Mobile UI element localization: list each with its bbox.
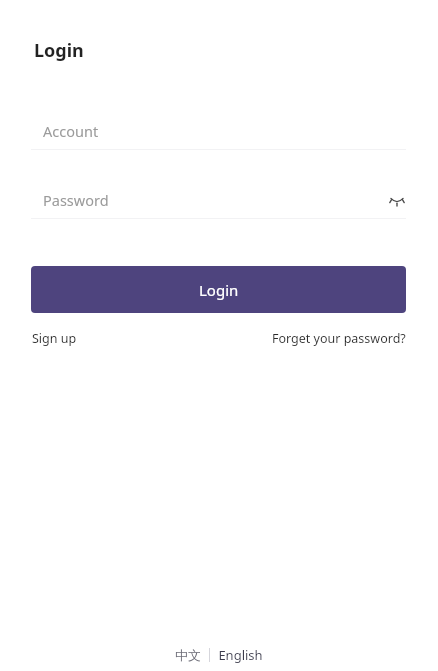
button[interactable]: Account (0, 113, 438, 150)
staticText: Password (43, 190, 109, 210)
staticText: Login (199, 280, 239, 300)
button[interactable]: 中文 (167, 643, 209, 667)
staticText: Account (43, 121, 99, 141)
staticText: 中文 (175, 647, 201, 663)
button[interactable]: Login (31, 266, 406, 313)
button[interactable]: English (210, 642, 271, 668)
button[interactable]: Password (0, 182, 438, 219)
staticText: English (218, 646, 263, 664)
staticText: Forget your password? (272, 330, 406, 347)
button[interactable]: Show password (387, 190, 407, 210)
staticText: Sign up (32, 330, 77, 347)
button[interactable]: Sign up (32, 327, 77, 350)
staticText: Login (34, 38, 84, 63)
button[interactable]: Forget your password? (272, 327, 406, 350)
